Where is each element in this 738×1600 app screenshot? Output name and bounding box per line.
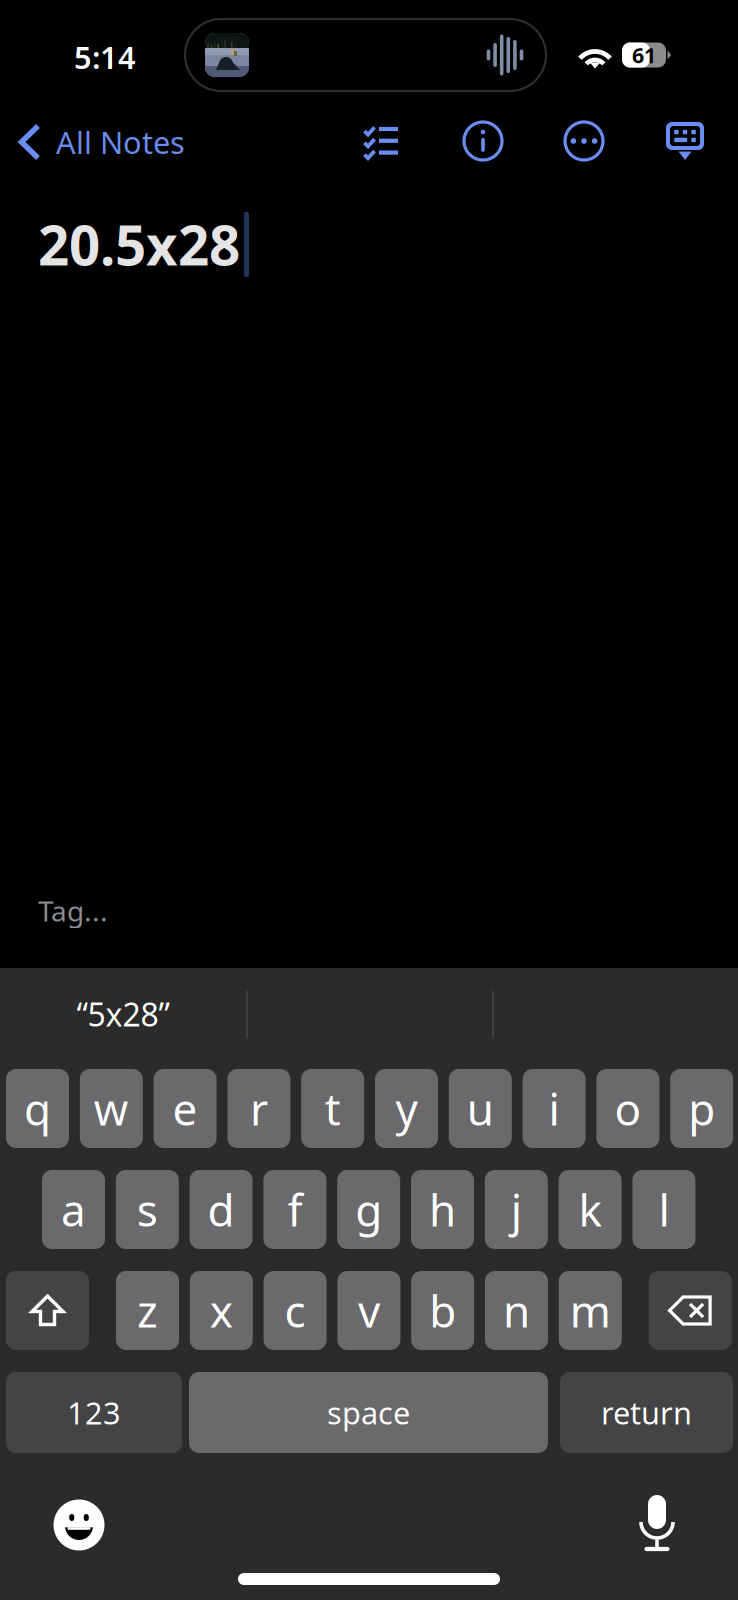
staticText: y [395,1079,417,1138]
button[interactable]: Shift [6,1271,89,1350]
staticText: l [658,1180,669,1239]
staticText: k [579,1180,602,1239]
button[interactable]: Hide Keyboard [655,111,715,171]
staticText: d [208,1180,235,1239]
staticText: c [285,1281,306,1340]
staticText: n [503,1281,530,1340]
button[interactable]: “5x28” [0,968,246,1060]
staticText: x [210,1281,233,1340]
button[interactable]: x [190,1271,253,1350]
button[interactable]: e [154,1069,217,1148]
button[interactable]: space [189,1372,548,1453]
button[interactable]: n [485,1271,548,1350]
staticText: t [325,1079,341,1138]
button[interactable]: q [6,1069,69,1148]
button[interactable]: o [596,1069,659,1148]
button[interactable]: g [337,1170,400,1249]
button[interactable]: m [559,1271,622,1350]
staticText: space [327,1392,410,1433]
button[interactable]: More [554,111,614,171]
staticText: w [94,1079,129,1138]
staticText: u [467,1079,494,1138]
staticText: b [429,1281,456,1340]
button[interactable]: s [116,1170,179,1249]
staticText: e [173,1079,198,1138]
button[interactable]: r [227,1069,290,1148]
staticText: q [24,1079,51,1138]
button[interactable]: w [80,1069,143,1148]
button[interactable]: k [559,1170,622,1249]
button[interactable]: h [411,1170,474,1249]
staticText: g [355,1180,382,1239]
button[interactable]: Dictation [623,1489,691,1557]
staticText: All Notes [56,122,185,162]
button[interactable]: p [670,1069,733,1148]
staticText: j [511,1180,522,1239]
button[interactable]: b [411,1271,474,1350]
button[interactable]: j [485,1170,548,1249]
button[interactable]: t [301,1069,364,1148]
button[interactable]: u [449,1069,512,1148]
staticText: “5x28” [76,993,169,1035]
staticText: i [549,1079,560,1138]
staticText: 5:14 [74,37,136,77]
staticText: 61 [632,41,656,69]
staticText: a [61,1180,86,1239]
button[interactable]: l [632,1170,695,1249]
staticText: 20.5x28 [38,208,240,281]
staticText: v [358,1281,380,1340]
button[interactable]: Emoji [45,1491,113,1559]
staticText: z [137,1281,158,1340]
staticText: r [250,1079,268,1138]
button[interactable]: i [523,1069,586,1148]
staticText: h [429,1180,456,1239]
staticText: 123 [67,1392,121,1433]
staticText: m [570,1281,611,1340]
staticText: p [688,1079,715,1138]
button[interactable]: return [560,1372,733,1453]
button[interactable]: v [337,1271,400,1350]
button[interactable]: f [263,1170,326,1249]
button[interactable]: y [375,1069,438,1148]
button[interactable]: a [42,1170,105,1249]
staticText: return [601,1392,692,1433]
button[interactable]: z [116,1271,179,1350]
staticText: Tag... [38,892,108,929]
button[interactable]: 123 [6,1372,182,1453]
staticText: o [614,1079,641,1138]
button[interactable]: c [264,1271,327,1350]
button[interactable]: Checklist [351,111,411,171]
button[interactable]: d [190,1170,253,1249]
button[interactable]: Delete [649,1271,732,1350]
staticText: f [287,1180,302,1239]
button[interactable]: All Notes [0,112,195,172]
button[interactable]: Info [453,111,513,171]
staticText: s [137,1180,158,1239]
